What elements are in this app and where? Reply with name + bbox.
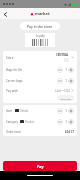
button[interactable]: Pay with: [3, 86, 77, 95]
staticText: Store: [6, 56, 14, 60]
button[interactable]: Add code: [57, 95, 74, 101]
staticText: Pay: [37, 164, 44, 169]
button[interactable]: Increase: [68, 119, 74, 125]
button[interactable]: Increase: [68, 67, 74, 73]
button[interactable]: Back: [0, 9, 10, 19]
button[interactable]: Item: [3, 105, 77, 116]
staticText: Carrier bags: [6, 79, 23, 83]
button[interactable]: Category: [3, 116, 77, 127]
staticText: Card ••1234: [55, 89, 70, 93]
staticText: Category: [6, 120, 18, 124]
button[interactable]: Pay: [3, 161, 77, 171]
button[interactable]: Decrease: [57, 78, 63, 84]
staticText: Order total: [6, 130, 21, 134]
staticText: 1: [65, 79, 67, 83]
staticText: 1: [65, 109, 67, 113]
staticText: Item: [6, 109, 13, 113]
staticText: 1: [65, 68, 67, 72]
button[interactable]: Decrease: [57, 67, 63, 73]
button[interactable]: Store: [3, 51, 77, 64]
button[interactable]: Increase: [68, 108, 74, 114]
staticText: CENTRAL: [56, 53, 69, 57]
staticText: Product: [25, 120, 35, 124]
staticText: Bags for life: [6, 68, 23, 72]
staticText: Add code: [60, 97, 71, 100]
staticText: Pay in the store: [27, 24, 53, 29]
staticText: £24.17: [65, 130, 74, 134]
button[interactable]: Increase: [68, 78, 74, 84]
staticText: Pay with: [6, 89, 18, 93]
button[interactable]: Pay in the store: [20, 22, 60, 30]
staticText: 1: [65, 120, 67, 124]
staticText: market: [35, 11, 50, 16]
staticText: Loyalty: [36, 34, 45, 38]
button[interactable]: Decrease: [57, 108, 63, 114]
staticText: Details: [20, 109, 29, 113]
button[interactable]: Decrease: [57, 119, 63, 125]
